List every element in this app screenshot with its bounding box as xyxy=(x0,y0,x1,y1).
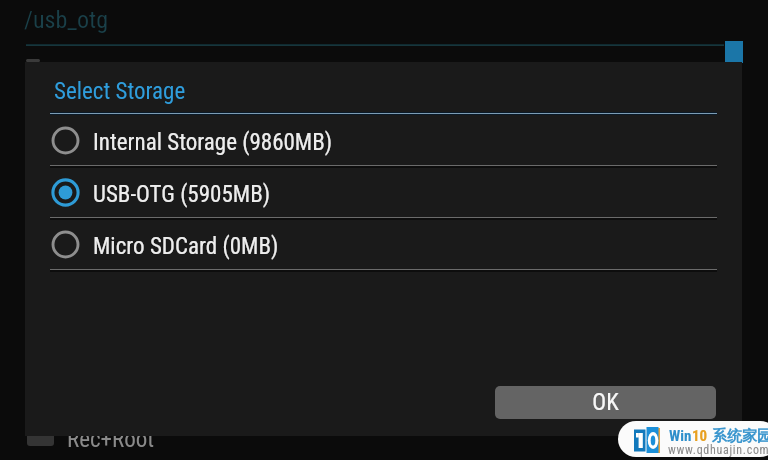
button[interactable]: Scroll xyxy=(725,41,743,63)
staticText: /usb_otg xyxy=(24,6,108,34)
staticText: www.qdhuajin.com xyxy=(668,443,768,457)
button[interactable]: Micro SDCard (0MB) xyxy=(50,218,717,270)
button[interactable]: OK xyxy=(495,386,716,419)
staticText: 系统家园 xyxy=(712,427,768,446)
staticText: USB-OTG (5905MB) xyxy=(93,181,271,208)
staticText: Win xyxy=(669,427,692,445)
staticText: 10 xyxy=(692,427,708,445)
button[interactable]: Toggle Rec+Root xyxy=(27,431,54,446)
staticText: Internal Storage (9860MB) xyxy=(93,129,333,156)
staticText: OK xyxy=(592,389,619,416)
staticText: Select Storage xyxy=(54,78,186,105)
staticText: Micro SDCard (0MB) xyxy=(93,233,279,260)
button[interactable]: Internal Storage (9860MB) xyxy=(50,114,717,166)
staticText: Rec+Root xyxy=(67,426,155,453)
button[interactable]: USB-OTG (5905MB) xyxy=(50,166,717,218)
